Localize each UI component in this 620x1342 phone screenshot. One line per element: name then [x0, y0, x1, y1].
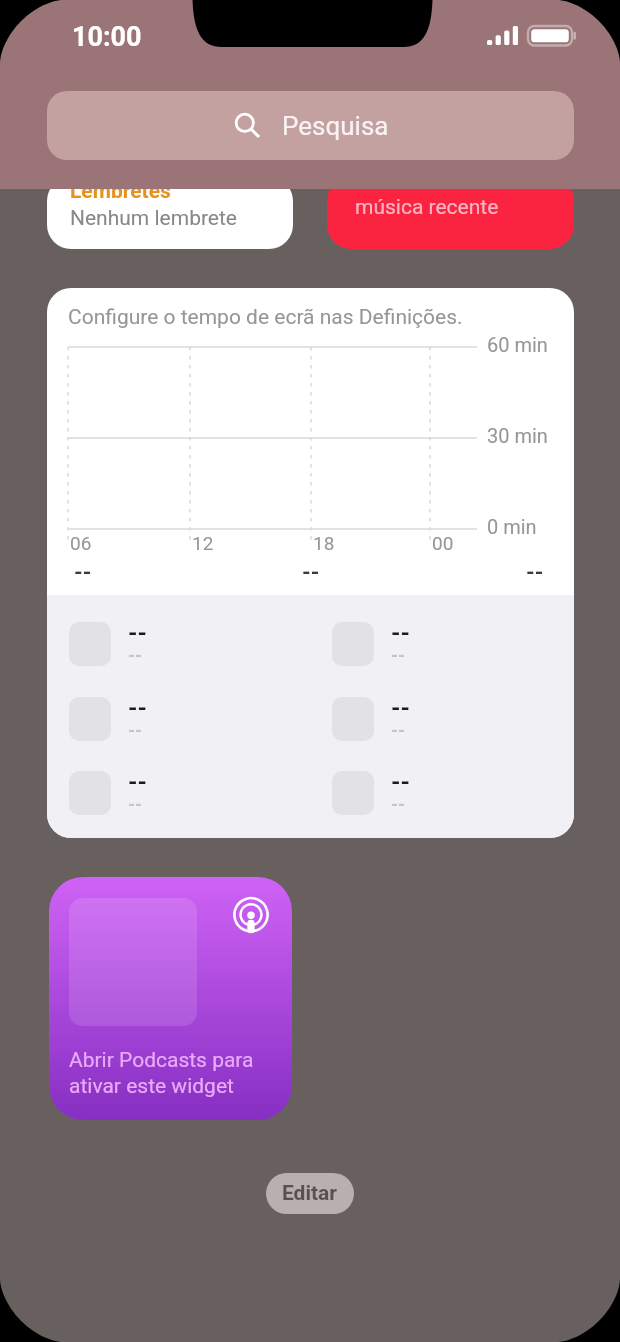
staticText: --: [128, 794, 143, 815]
staticText: --: [128, 645, 143, 666]
staticText: música recente: [355, 195, 499, 220]
staticText: --: [391, 619, 410, 647]
other: Search: [234, 112, 261, 139]
staticText: Lembretes: [70, 179, 171, 204]
staticText: --: [526, 560, 544, 586]
staticText: 0 min: [487, 515, 537, 538]
staticText: 06: [70, 532, 92, 554]
button[interactable]: Search: [47, 91, 574, 160]
staticText: --: [128, 694, 147, 722]
button[interactable]: música recente: [327, 177, 574, 249]
staticText: Abrir Podcasts para ativar este widget: [69, 1048, 254, 1098]
button[interactable]: Editar: [266, 1173, 354, 1214]
staticText: --: [391, 694, 410, 722]
staticText: --: [391, 794, 406, 815]
button[interactable]: Configure o tempo de ecrã nas Definições…: [47, 288, 574, 838]
staticText: --: [391, 645, 406, 666]
staticText: --: [74, 560, 92, 586]
staticText: --: [128, 619, 147, 647]
staticText: Nenhum lembrete: [70, 206, 237, 231]
staticText: 10:00: [72, 21, 142, 53]
staticText: --: [391, 720, 406, 741]
button[interactable]: Podcasts: [49, 877, 292, 1120]
staticText: Configure o tempo de ecrã nas Definições…: [68, 305, 463, 330]
staticText: --: [128, 768, 147, 796]
button[interactable]: Lembretes: [47, 177, 293, 249]
staticText: 18: [313, 532, 335, 554]
staticText: 00: [432, 532, 454, 554]
staticText: --: [302, 560, 320, 586]
staticText: 60 min: [487, 333, 548, 356]
staticText: Editar: [282, 1181, 338, 1206]
staticText: --: [391, 768, 410, 796]
staticText: Pesquisa: [282, 111, 389, 141]
staticText: --: [128, 720, 143, 741]
staticText: 12: [192, 532, 214, 554]
staticText: 30 min: [487, 424, 548, 447]
other: Podcasts: [232, 898, 270, 936]
